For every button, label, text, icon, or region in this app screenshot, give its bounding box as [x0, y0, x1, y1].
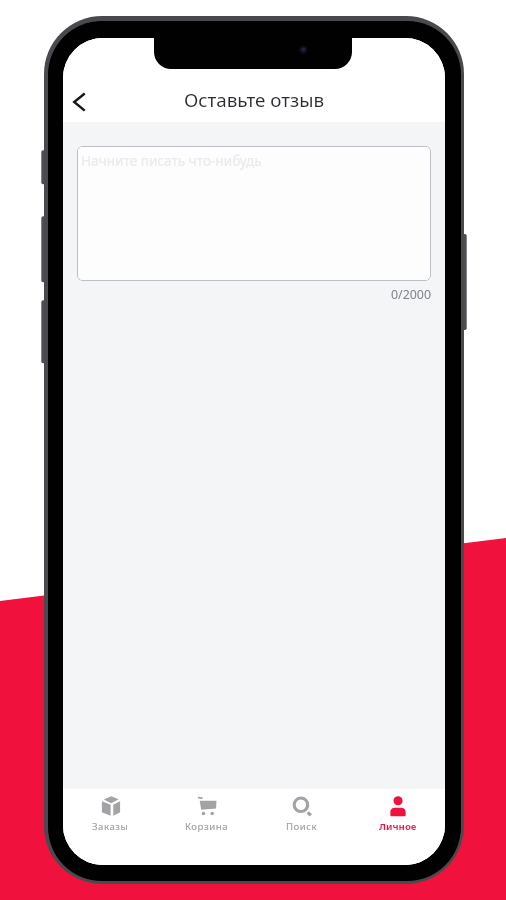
staticText: 0/2000: [390, 286, 431, 303]
staticText: Начните писать что-нибудь: [81, 151, 262, 170]
button[interactable]: Заказы: [63, 789, 158, 865]
staticText: Оставьте отзыв: [184, 87, 325, 113]
button[interactable]: Back: [63, 84, 97, 120]
button[interactable]: Поиск: [254, 789, 349, 865]
button[interactable]: Личное: [350, 789, 445, 865]
staticText: Корзина: [185, 820, 229, 833]
staticText: Заказы: [92, 820, 129, 833]
button[interactable]: Начните писать что-нибудь: [77, 146, 431, 281]
staticText: Личное: [379, 820, 417, 833]
button[interactable]: Корзина: [159, 789, 254, 865]
staticText: Поиск: [286, 820, 318, 833]
